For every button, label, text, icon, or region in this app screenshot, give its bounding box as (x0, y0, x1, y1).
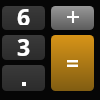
staticText: 3 (17, 35, 31, 56)
button[interactable]: Decimal point (2, 65, 45, 91)
staticText: 6 (17, 6, 31, 25)
button[interactable]: 3 (2, 35, 45, 60)
button[interactable]: 6 (2, 6, 45, 30)
button[interactable]: Equals (51, 35, 94, 91)
button[interactable]: Plus (51, 6, 94, 30)
